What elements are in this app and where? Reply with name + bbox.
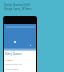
staticText: Save parking bbox=[5, 68, 19, 71]
staticText: Kings Lane, B'ham bbox=[4, 7, 32, 11]
staticText: Opens 10:30 AM bbox=[5, 63, 22, 66]
staticText: Dairy Queen bbox=[5, 52, 22, 56]
staticText: Closed bbox=[5, 58, 13, 61]
staticText: Dairy Queen Grill bbox=[4, 3, 30, 7]
